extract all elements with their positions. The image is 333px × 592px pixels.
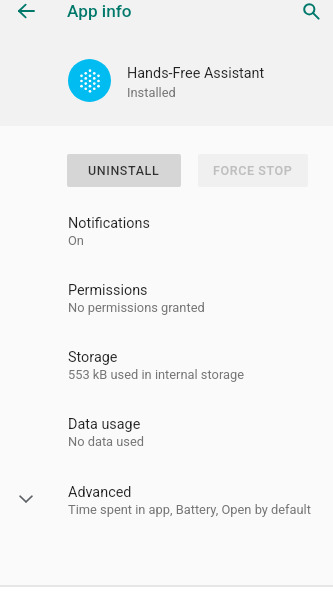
staticText: UNINSTALL <box>88 163 160 178</box>
button[interactable]: Storage <box>0 349 333 416</box>
staticText: Installed <box>127 85 176 100</box>
button[interactable]: Search <box>291 0 331 31</box>
staticText: Data usage <box>68 416 141 433</box>
button[interactable]: FORCE STOP <box>198 154 308 187</box>
button[interactable]: Permissions <box>0 282 333 349</box>
button[interactable]: Data usage <box>0 416 333 483</box>
staticText: Notifications <box>68 215 150 232</box>
button[interactable]: Back <box>6 0 46 31</box>
staticText: On <box>68 233 84 248</box>
staticText: No data used <box>68 434 145 449</box>
staticText: FORCE STOP <box>213 163 293 178</box>
button[interactable]: Notifications <box>0 215 333 282</box>
staticText: Advanced <box>68 484 132 501</box>
staticText: Time spent in app, Battery, Open by defa… <box>68 502 311 517</box>
staticText: No permissions granted <box>68 300 205 315</box>
staticText: Hands-Free Assistant <box>127 65 265 82</box>
staticText: Permissions <box>68 282 148 299</box>
staticText: Storage <box>68 349 118 366</box>
button[interactable]: UNINSTALL <box>67 154 181 187</box>
staticText: 553 kB used in internal storage <box>68 367 244 382</box>
staticText: App info <box>67 1 132 21</box>
button[interactable]: Advanced <box>0 484 333 551</box>
